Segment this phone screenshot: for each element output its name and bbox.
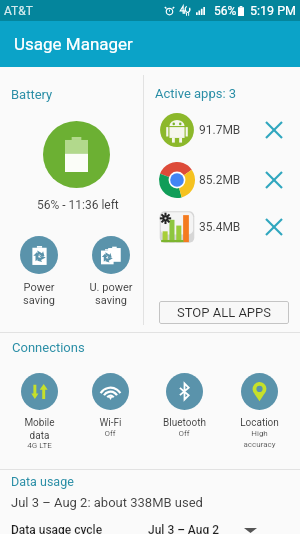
staticText: 5:19 PM bbox=[250, 3, 297, 18]
staticText: Off bbox=[178, 429, 190, 438]
staticText: 56% bbox=[214, 4, 237, 18]
staticText: 35.4MB bbox=[199, 220, 241, 234]
staticText: Mobile data bbox=[24, 417, 55, 441]
staticText: Battery bbox=[11, 87, 53, 102]
staticText: Connections bbox=[12, 340, 85, 355]
staticText: Jul 3 – Aug 2: about 338MB used bbox=[11, 495, 203, 510]
button[interactable]: STOP ALL APPS bbox=[159, 301, 289, 324]
button[interactable]: Stop app bbox=[261, 214, 287, 240]
button[interactable]: Wi-Fi bbox=[77, 373, 143, 438]
staticText: Jul 3 – Aug 2 bbox=[148, 523, 220, 534]
staticText: Power saving bbox=[23, 281, 55, 307]
button[interactable]: Mobile data bbox=[6, 373, 72, 450]
button[interactable]: Power saving bbox=[8, 236, 70, 307]
staticText: 85.2MB bbox=[199, 173, 241, 187]
button[interactable]: U. power saving bbox=[80, 236, 142, 307]
staticText: High accuracy bbox=[243, 429, 276, 449]
staticText: Location bbox=[240, 417, 279, 429]
staticText: 56% - 11:36 left bbox=[37, 198, 119, 212]
staticText: 91.7MB bbox=[199, 123, 241, 137]
staticText: Wi-Fi bbox=[99, 417, 122, 429]
staticText: Active apps: 3 bbox=[155, 86, 237, 101]
staticText: STOP ALL APPS bbox=[177, 305, 271, 320]
staticText: Data usage cycle bbox=[11, 523, 103, 534]
button[interactable]: Bluetooth bbox=[151, 373, 217, 438]
button[interactable]: Stop app bbox=[261, 167, 287, 193]
staticText: Off bbox=[104, 429, 116, 438]
staticText: AT&T bbox=[4, 4, 33, 18]
staticText: Usage Manager bbox=[14, 34, 133, 54]
staticText: Data usage bbox=[11, 474, 74, 489]
staticText: 4G LTE bbox=[27, 441, 52, 450]
button[interactable]: Location bbox=[226, 373, 292, 449]
button[interactable]: Data usage cycle bbox=[0, 523, 300, 534]
button[interactable]: Battery level bbox=[43, 121, 110, 188]
staticText: U. power saving bbox=[89, 281, 133, 307]
staticText: Bluetooth bbox=[163, 417, 206, 429]
button[interactable]: Stop app bbox=[261, 117, 287, 143]
